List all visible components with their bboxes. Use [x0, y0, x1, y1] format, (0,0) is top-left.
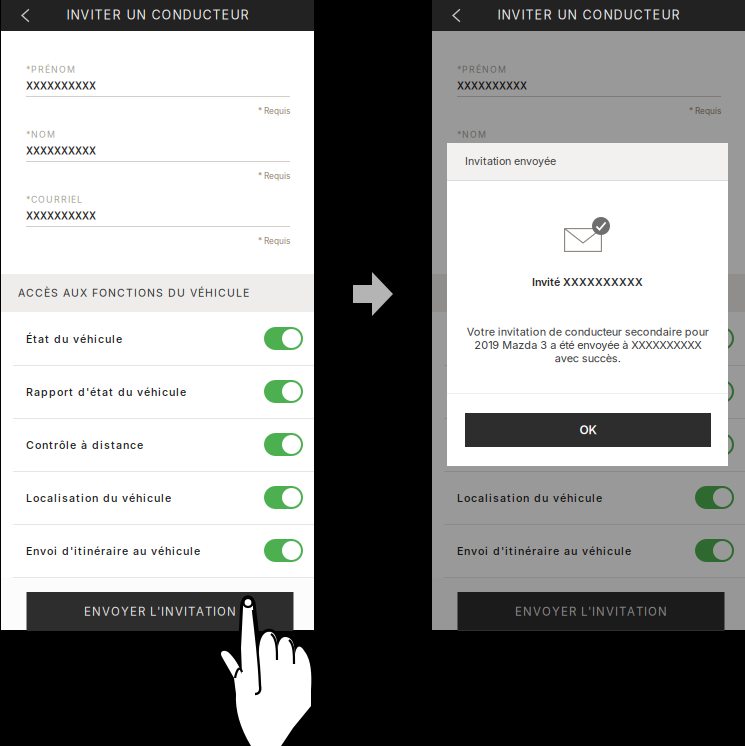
button[interactable]: OK: [465, 413, 711, 447]
staticText: * P R É N O M: [26, 64, 75, 75]
staticText: E n v o i d ' i t i n é r a i r e a u v …: [457, 544, 631, 557]
button[interactable]: E n v o i d ' i t i n é r a i r e a u v …: [432, 524, 745, 577]
button[interactable]: E n v o i d ' i t i n é r a i r e a u v …: [1, 524, 314, 577]
staticText: OK: [579, 423, 596, 437]
staticText: XXXXXXXXXX: [26, 80, 96, 92]
button[interactable]: E N V O Y E R L ' I N V I T A T I O N: [457, 592, 724, 631]
staticText: E n v o i d ' i t i n é r a i r e a u v …: [26, 544, 200, 557]
staticText: A C C È S A U X F O N C T I O N S D U V …: [18, 287, 249, 299]
staticText: * C O U R R I E L: [26, 194, 82, 205]
staticText: E N V O Y E R L ' I N V I T A T I O N: [515, 605, 667, 618]
button[interactable]: R a p p o r t d ' é t a t d u v é h i c …: [1, 365, 314, 418]
button[interactable]: R a p p o r t d ' é t a t d u v é h i c …: [432, 365, 745, 418]
staticText: C o n t r ô l e à d i s t a n c e: [26, 438, 143, 451]
staticText: * Requis: [258, 236, 290, 246]
staticText: * P R É N O M: [457, 64, 506, 75]
staticText: * N O M: [26, 129, 55, 140]
staticText: R a p p o r t d ' é t a t d u v é h i c …: [26, 385, 186, 398]
staticText: E N V O Y E R L ' I N V I T A T I O N: [84, 605, 236, 618]
button[interactable]: Back: [6, 0, 48, 31]
button[interactable]: L o c a l i s a t i o n d u v é h i c u …: [432, 471, 745, 524]
staticText: * N O M: [457, 129, 486, 140]
staticText: * Requis: [689, 171, 721, 181]
staticText: L o c a l i s a t i o n d u v é h i c u …: [457, 491, 602, 504]
staticText: Votre invitation de conducteur secondair…: [466, 325, 708, 365]
staticText: R a p p o r t d ' é t a t d u v é h i c …: [457, 385, 617, 398]
staticText: * Requis: [258, 171, 290, 181]
button[interactable]: Back: [437, 0, 479, 31]
staticText: XXXXXXXXXX: [26, 210, 96, 222]
button[interactable]: C o n t r ô l e à d i s t a n c e: [1, 418, 314, 471]
button[interactable]: L o c a l i s a t i o n d u v é h i c u …: [1, 471, 314, 524]
staticText: XXXXXXXXXX: [26, 145, 96, 157]
staticText: Invitation envoyée: [465, 154, 556, 167]
staticText: L o c a l i s a t i o n d u v é h i c u …: [26, 491, 171, 504]
button[interactable]: E N V O Y E R L ' I N V I T A T I O N: [26, 592, 293, 631]
staticText: Invité XXXXXXXXXX: [532, 275, 643, 288]
staticText: É t a t d u v é h i c u l e: [26, 332, 122, 345]
staticText: XXXXXXXXXX: [457, 80, 527, 92]
staticText: * Requis: [258, 106, 290, 116]
button[interactable]: É t a t d u v é h i c u l e: [432, 312, 745, 365]
staticText: I N V I T E R U N C O N D U C T E U R: [497, 7, 679, 23]
button[interactable]: É t a t d u v é h i c u l e: [1, 312, 314, 365]
button[interactable]: C o n t r ô l e à d i s t a n c e: [432, 418, 745, 471]
staticText: I N V I T E R U N C O N D U C T E U R: [66, 7, 248, 23]
staticText: É t a t d u v é h i c u l e: [457, 332, 553, 345]
staticText: C o n t r ô l e à d i s t a n c e: [457, 438, 574, 451]
staticText: * Requis: [689, 106, 721, 116]
